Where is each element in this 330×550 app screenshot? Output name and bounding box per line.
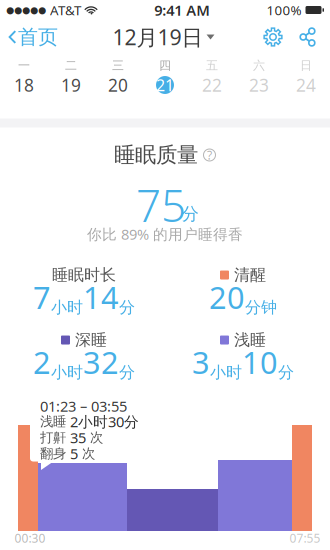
staticText: 100%	[266, 1, 301, 19]
staticText: 00:30	[14, 530, 45, 546]
staticText: 小时	[51, 363, 83, 382]
staticText: 睡眠时长	[52, 265, 116, 285]
staticText: 9:41 AM	[154, 0, 210, 20]
staticText: 35	[70, 428, 86, 447]
staticText: 首页	[18, 25, 58, 49]
staticText: 24	[296, 73, 316, 96]
button[interactable]: Share	[298, 27, 317, 46]
button[interactable]: 12月19日	[112, 15, 214, 59]
staticText: 分钟	[245, 298, 277, 317]
staticText: 浅睡	[40, 413, 66, 430]
staticText: 日	[300, 58, 312, 73]
staticText: 7	[33, 277, 51, 317]
staticText: 32	[83, 342, 119, 382]
staticText: 四	[159, 58, 171, 73]
staticText: 你比 89% 的用户睡得香	[87, 224, 243, 244]
staticText: 2小时30分	[70, 412, 139, 431]
staticText: 22	[202, 73, 222, 96]
staticText: 翻身	[40, 445, 66, 462]
staticText: 19	[61, 73, 81, 96]
staticText: 3	[192, 342, 210, 382]
button[interactable]: 首页	[0, 17, 64, 57]
staticText: 分	[119, 363, 135, 382]
staticText: 小时	[210, 363, 242, 382]
staticText: 睡眠质量	[114, 142, 198, 168]
button[interactable]: 一	[0, 56, 47, 99]
staticText: 浅睡	[234, 330, 266, 350]
staticText: 三	[112, 58, 124, 73]
staticText: 六	[253, 58, 265, 73]
staticText: 打鼾	[40, 429, 66, 446]
staticText: 分	[119, 298, 135, 317]
staticText: 一	[18, 58, 30, 73]
staticText: 01:23 – 03:55	[40, 396, 127, 416]
staticText: 21	[156, 74, 174, 96]
staticText: 12月19日	[112, 23, 202, 51]
button[interactable]: 三	[94, 56, 141, 99]
staticText: 次	[82, 445, 95, 462]
button[interactable]: 六	[235, 56, 282, 99]
staticText: 分	[181, 203, 198, 225]
staticText: 07:55	[289, 530, 320, 546]
staticText: 75	[136, 176, 186, 234]
staticText: 10	[242, 342, 278, 382]
staticText: 深睡	[75, 330, 107, 350]
staticText: AT&T	[50, 1, 81, 19]
staticText: 20	[209, 277, 245, 317]
button[interactable]: Settings	[263, 27, 283, 47]
staticText: 清醒	[234, 265, 266, 285]
staticText: 次	[90, 429, 103, 446]
button[interactable]: 四	[141, 56, 188, 99]
staticText: ●●●●●	[6, 5, 46, 15]
staticText: 20	[108, 73, 128, 96]
staticText: 小时	[51, 298, 83, 317]
staticText: 2	[33, 342, 51, 382]
button[interactable]: 日	[282, 56, 329, 99]
staticText: 五	[206, 58, 218, 73]
staticText: ?	[207, 147, 212, 163]
button[interactable]: 二	[47, 56, 94, 99]
staticText: 14	[83, 277, 119, 317]
staticText: 18	[14, 73, 34, 96]
staticText: 5	[70, 444, 78, 463]
button[interactable]: 五	[188, 56, 235, 99]
staticText: 二	[65, 58, 77, 73]
staticText: 分	[278, 363, 294, 382]
staticText: 23	[249, 73, 269, 96]
